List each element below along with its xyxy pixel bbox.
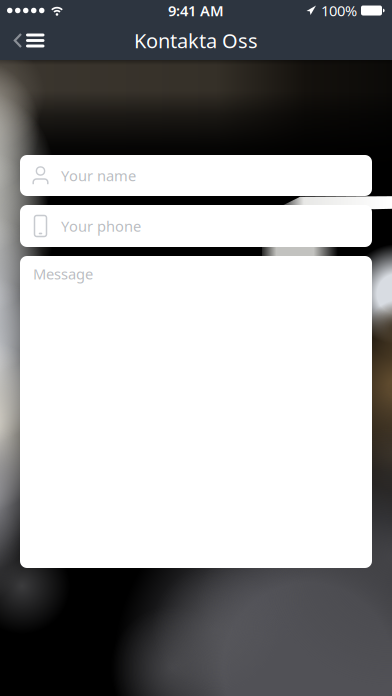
button[interactable]: Your name — [20, 155, 372, 196]
button[interactable]: Message — [20, 256, 372, 568]
staticText: 100% — [321, 1, 357, 20]
staticText: Message — [33, 264, 93, 283]
staticText: Your phone — [61, 216, 141, 236]
staticText: Your name — [61, 166, 136, 185]
staticText: 9:41 AM — [168, 1, 224, 20]
button[interactable]: Menu — [0, 22, 44, 58]
button[interactable]: Your phone — [20, 205, 372, 247]
staticText: Kontakta Oss — [134, 27, 258, 54]
